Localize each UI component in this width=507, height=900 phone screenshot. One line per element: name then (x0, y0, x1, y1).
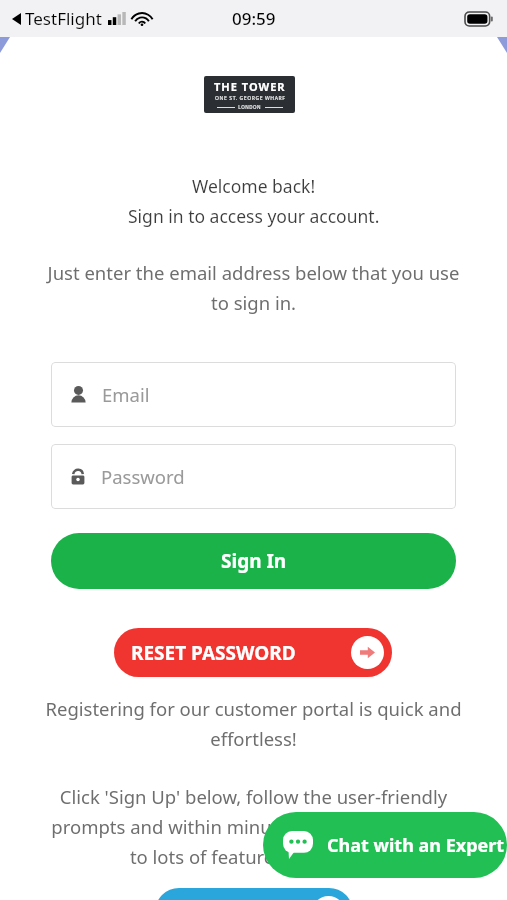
button[interactable]: Email input field (51, 362, 456, 427)
staticText: Email (102, 382, 150, 407)
staticText: Welcome back! (192, 174, 316, 198)
staticText: 09:59 (232, 7, 276, 30)
button[interactable]: Sign In (51, 533, 456, 589)
button[interactable] (155, 888, 353, 900)
staticText: LONDON (235, 104, 265, 110)
button[interactable]: RESET PASSWORD (114, 628, 392, 677)
staticText: Just enter the email address below that … (40, 260, 467, 315)
button[interactable]: Chat with an Expert (263, 812, 507, 878)
staticText: Click 'Sign Up' below, follow the user-f… (40, 784, 467, 869)
button[interactable]: Password input field (51, 444, 456, 509)
staticText: Chat with an Expert (327, 833, 505, 858)
staticText: Sign In (221, 548, 287, 574)
staticText: Password (101, 464, 185, 489)
staticText: Registering for our customer portal is q… (40, 696, 467, 751)
staticText: ONE ST. GEORGE WHARF (215, 95, 286, 102)
staticText: THE TOWER (214, 79, 286, 94)
staticText: Sign in to access your account. (128, 204, 380, 228)
staticText: RESET PASSWORD (131, 640, 296, 666)
staticText: TestFlight (25, 7, 102, 30)
